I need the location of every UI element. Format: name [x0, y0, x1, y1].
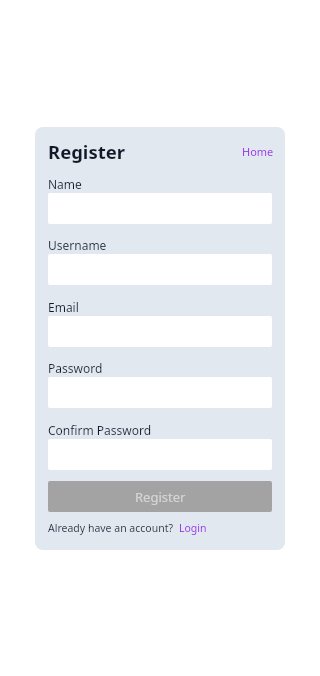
staticText: Register [48, 139, 126, 164]
staticText: Username [48, 237, 107, 253]
button[interactable]: Home [242, 144, 274, 159]
button[interactable]: Login [179, 521, 207, 535]
staticText: Confirm Password [48, 422, 152, 438]
staticText: Register [135, 488, 186, 506]
staticText: Name [48, 176, 82, 192]
button[interactable]: Register [48, 481, 272, 512]
staticText: Login [179, 521, 207, 535]
staticText: Password [48, 360, 103, 376]
staticText: Home [242, 144, 274, 159]
staticText: Already have an account? [48, 521, 174, 535]
staticText: Email [48, 299, 79, 315]
